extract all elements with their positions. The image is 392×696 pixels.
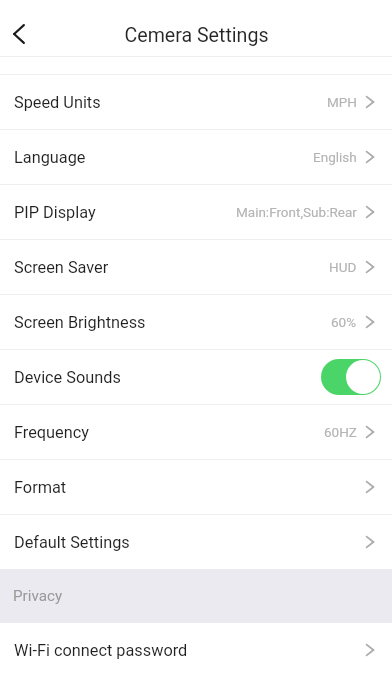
staticText: Wi-Fi connect password bbox=[14, 641, 188, 660]
staticText: Cemera Settings bbox=[124, 24, 269, 47]
staticText: Screen Saver bbox=[14, 258, 109, 277]
button[interactable]: Wi-Fi connect password bbox=[0, 623, 392, 677]
button[interactable]: PIP Display bbox=[0, 185, 392, 239]
staticText: HUD bbox=[329, 259, 357, 275]
button[interactable]: Screen Brightness bbox=[0, 295, 392, 349]
button[interactable]: Back bbox=[0, 15, 38, 53]
button[interactable]: Device Sounds bbox=[0, 350, 392, 404]
button[interactable]: Default Settings bbox=[0, 515, 392, 569]
staticText: Main:Front,Sub:Rear bbox=[236, 204, 357, 220]
staticText: Speed Units bbox=[14, 93, 101, 112]
staticText: Privacy bbox=[13, 587, 63, 605]
staticText: Language bbox=[14, 148, 86, 167]
button[interactable]: Frequency bbox=[0, 405, 392, 459]
staticText: Default Settings bbox=[14, 533, 130, 552]
staticText: Frequency bbox=[14, 423, 89, 442]
staticText: MPH bbox=[327, 94, 357, 110]
staticText: 60% bbox=[331, 314, 357, 330]
staticText: Device Sounds bbox=[14, 368, 121, 387]
button[interactable]: Screen Saver bbox=[0, 240, 392, 294]
button[interactable]: Format bbox=[0, 460, 392, 514]
staticText: PIP Display bbox=[14, 203, 96, 222]
staticText: 60HZ bbox=[324, 424, 357, 440]
button[interactable]: Language bbox=[0, 130, 392, 184]
button[interactable]: Speed Units bbox=[0, 75, 392, 129]
staticText: Screen Brightness bbox=[14, 313, 146, 332]
button[interactable]: Device Sounds switch, on bbox=[321, 359, 381, 395]
staticText: Format bbox=[14, 478, 67, 497]
staticText: English bbox=[313, 149, 357, 165]
